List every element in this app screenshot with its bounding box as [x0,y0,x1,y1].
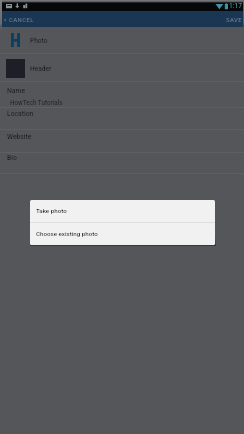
button[interactable]: Choose existing photo [30,223,215,245]
button[interactable]: Location [0,108,244,130]
staticText: Name [7,87,26,95]
button[interactable]: Name [0,82,244,108]
button[interactable]: CANCEL [0,16,39,23]
button[interactable]: Take photo [30,200,215,222]
staticText: Location [7,110,34,118]
staticText: SAVE [226,16,243,23]
button[interactable]: Photo [0,27,244,54]
staticText: Photo [30,37,48,45]
button[interactable]: Header [0,54,244,82]
staticText: CANCEL [9,16,34,23]
button[interactable]: Bio [0,153,244,174]
button[interactable]: SAVE [222,16,244,23]
staticText: HowTech Tutorials [10,99,63,106]
staticText: Website [7,133,32,141]
staticText: Take photo [36,207,67,214]
button[interactable]: Website [0,130,244,153]
staticText: 1:17 [229,2,242,10]
staticText: Header [30,65,52,73]
staticText: Choose existing photo [36,230,98,237]
staticText: Bio [7,154,17,162]
